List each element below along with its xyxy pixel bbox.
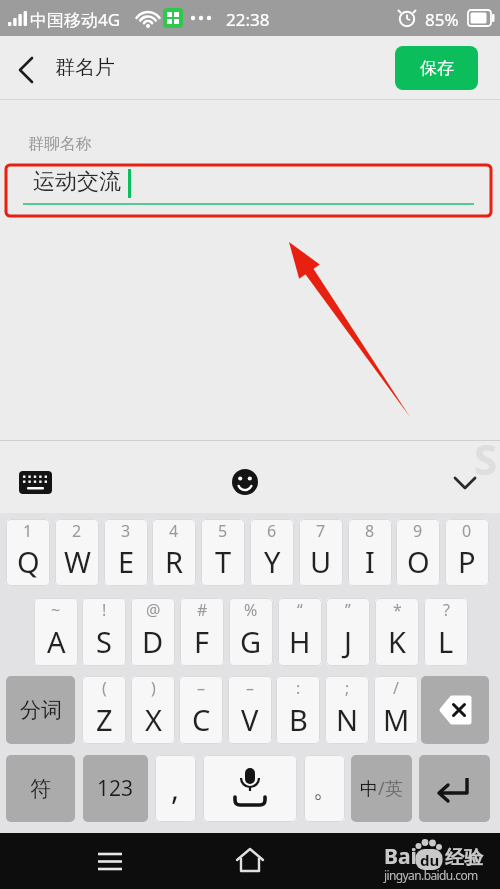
staticText: W <box>64 542 91 581</box>
staticText: ” <box>345 599 351 621</box>
staticText: 3 <box>121 520 131 542</box>
staticText: ! <box>102 599 107 621</box>
button[interactable]: 9 <box>396 519 440 586</box>
staticText: 4 <box>169 520 179 542</box>
staticText: : <box>296 677 301 699</box>
staticText: * <box>393 599 402 621</box>
button[interactable] <box>421 676 489 744</box>
staticText: 8 <box>365 520 375 542</box>
staticText: A <box>47 622 66 661</box>
button[interactable]: % <box>229 598 273 666</box>
staticText: U <box>310 542 332 581</box>
staticText: K <box>388 622 406 661</box>
staticText: 群名片 <box>55 55 115 80</box>
staticText: N <box>336 700 359 739</box>
button[interactable]: ) <box>131 676 175 744</box>
button[interactable] <box>16 466 56 498</box>
staticText: , <box>171 768 180 809</box>
staticText: ? <box>443 599 450 621</box>
button[interactable] <box>419 755 490 822</box>
staticText: J <box>344 622 352 661</box>
staticText: 。 <box>313 774 337 804</box>
staticText: Z <box>96 700 113 739</box>
button[interactable]: ! <box>82 598 126 666</box>
staticText: – <box>197 677 206 699</box>
button[interactable]: / <box>374 676 418 744</box>
staticText: @ <box>146 599 161 621</box>
staticText: Y <box>264 542 281 581</box>
button[interactable]: 。 <box>304 755 345 822</box>
staticText: ( <box>102 677 107 699</box>
button[interactable]: 7 <box>299 519 343 586</box>
staticText: X <box>145 700 162 739</box>
button[interactable]: @ <box>131 598 175 666</box>
staticText: 22:38 <box>226 8 270 31</box>
button[interactable]: : <box>276 676 320 744</box>
button[interactable]: – <box>179 676 223 744</box>
staticText: T <box>215 542 232 581</box>
staticText: R <box>165 542 184 581</box>
button[interactable]: 符 <box>6 755 75 822</box>
staticText: L <box>438 622 454 661</box>
staticText: E <box>118 542 135 581</box>
button[interactable]: “ <box>278 598 322 666</box>
button[interactable]: 3 <box>104 519 148 586</box>
button[interactable]: – <box>228 676 272 744</box>
button[interactable]: ” <box>326 598 370 666</box>
staticText: 中国移动4G <box>30 8 121 31</box>
button[interactable]: 2 <box>55 519 99 586</box>
staticText: 保存 <box>420 58 454 79</box>
staticText: 中/英 <box>360 776 403 801</box>
button[interactable]: ~ <box>34 598 78 666</box>
button[interactable]: 123 <box>83 755 148 822</box>
staticText: ; <box>345 677 350 699</box>
button[interactable]: 4 <box>152 519 196 586</box>
staticText: H <box>289 622 311 661</box>
staticText: 123 <box>97 774 134 803</box>
button[interactable]: ? <box>424 598 468 666</box>
button[interactable]: ( <box>82 676 126 744</box>
staticText: D <box>142 622 164 661</box>
button[interactable]: 分词 <box>6 676 75 744</box>
staticText: 符 <box>30 776 51 802</box>
button[interactable] <box>8 50 48 90</box>
button[interactable]: # <box>180 598 224 666</box>
button[interactable] <box>446 468 484 498</box>
staticText: 6 <box>267 520 277 542</box>
button[interactable]: 保存 <box>395 46 478 90</box>
staticText: O <box>407 542 430 581</box>
staticText: G <box>240 622 262 661</box>
staticText: B <box>289 700 308 739</box>
staticText: P <box>458 542 476 581</box>
staticText: % <box>244 599 258 621</box>
button[interactable]: 8 <box>348 519 392 586</box>
button[interactable] <box>203 755 297 822</box>
button[interactable]: ; <box>325 676 369 744</box>
staticText: S <box>474 430 498 487</box>
button[interactable] <box>230 841 270 881</box>
button[interactable] <box>90 843 130 879</box>
button[interactable]: 0 <box>445 519 489 586</box>
staticText: V <box>241 700 259 739</box>
staticText: 5 <box>218 520 228 542</box>
staticText: C <box>192 700 211 739</box>
staticText: 群聊名称 <box>28 134 92 154</box>
button[interactable]: 1 <box>6 519 50 586</box>
button[interactable] <box>228 466 262 498</box>
staticText: jingyan.baidu.com <box>384 867 478 883</box>
staticText: 分词 <box>20 697 62 723</box>
button[interactable]: 中/英 <box>351 755 412 822</box>
staticText: ~ <box>51 599 61 621</box>
staticText: 2 <box>72 520 82 542</box>
staticText: “ <box>297 599 303 621</box>
staticText: # <box>197 599 208 621</box>
staticText: I <box>365 542 375 581</box>
staticText: F <box>194 622 210 661</box>
button[interactable]: , <box>155 755 196 822</box>
button[interactable]: * <box>375 598 419 666</box>
staticText: 0 <box>462 520 472 542</box>
button[interactable]: 6 <box>250 519 294 586</box>
button[interactable]: 5 <box>201 519 245 586</box>
staticText: – <box>246 677 255 699</box>
staticText: 7 <box>316 520 326 542</box>
